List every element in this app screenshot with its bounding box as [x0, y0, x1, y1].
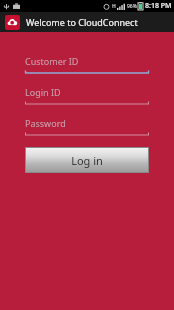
- staticText: H: [112, 3, 116, 10]
- staticText: Password: [25, 117, 66, 129]
- button[interactable]: Login ID: [25, 82, 149, 106]
- staticText: 8:18 PM: [145, 1, 172, 11]
- staticText: 96%: [127, 3, 137, 10]
- button[interactable]: Customer ID: [25, 51, 149, 75]
- staticText: Customer ID: [25, 55, 79, 67]
- button[interactable]: Log in: [26, 148, 148, 172]
- staticText: Login ID: [25, 86, 61, 98]
- button[interactable]: Password: [25, 113, 149, 137]
- staticText: Welcome to CloudConnect: [26, 16, 138, 28]
- button[interactable]: CloudConnect logo: [5, 15, 20, 30]
- staticText: Log in: [71, 153, 103, 168]
